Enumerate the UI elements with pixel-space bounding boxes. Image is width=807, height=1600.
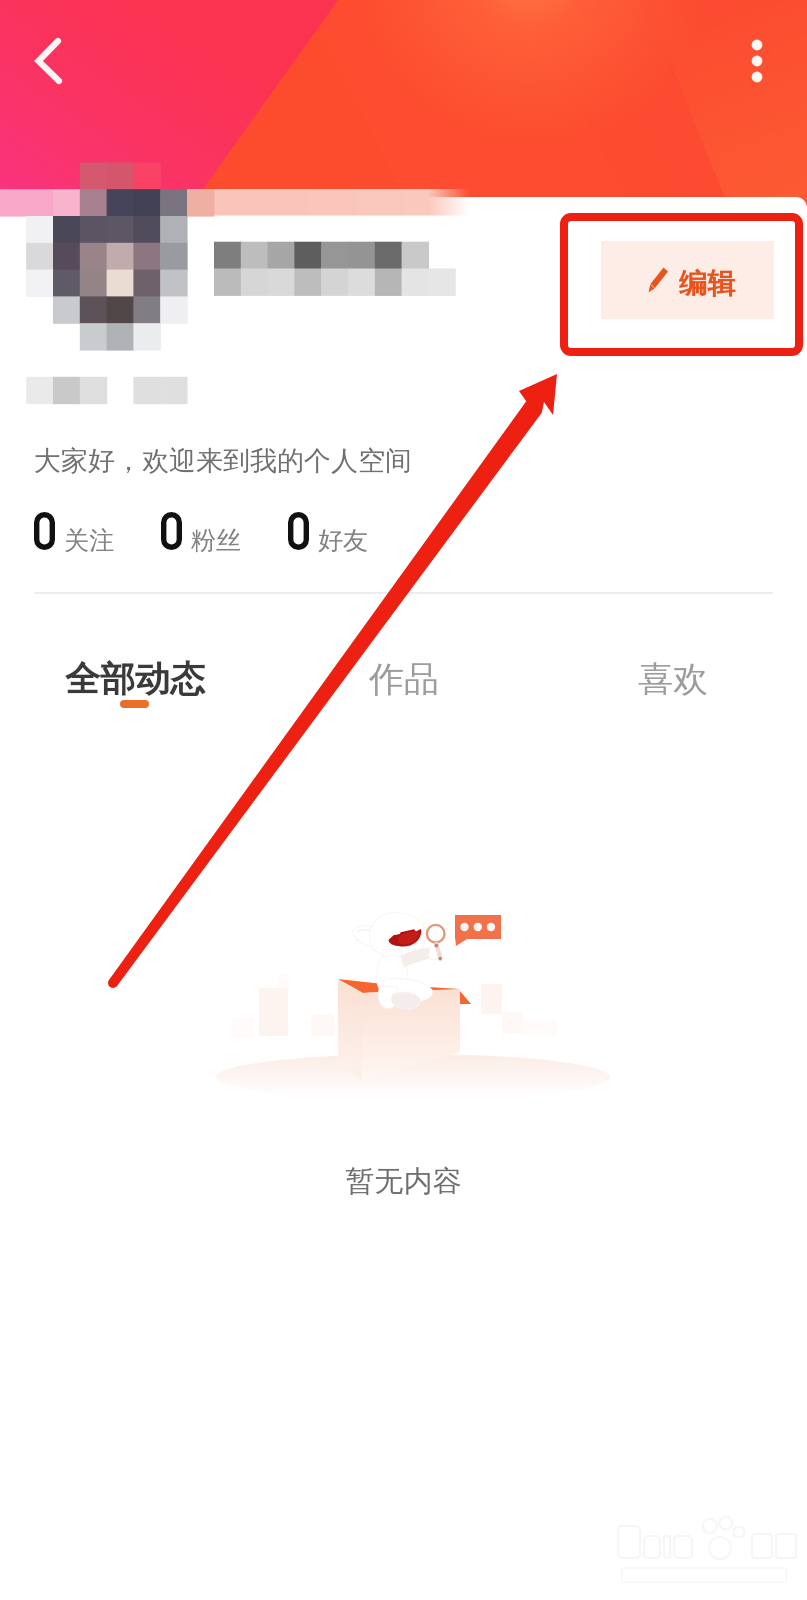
staticText: 暂无内容 [0,1163,807,1200]
button[interactable]: 粉丝 [155,503,281,565]
button[interactable]: 作品 [269,657,538,701]
button[interactable]: 好友 [282,503,408,565]
staticText: 粉丝 [191,525,241,556]
button[interactable]: Back [18,25,88,97]
staticText: 关注 [64,525,114,556]
button[interactable]: 编辑 [601,241,774,319]
button[interactable]: More options [722,26,792,96]
staticText: 大家好，欢迎来到我的个人空间 [34,444,412,478]
staticText: 喜欢 [638,657,708,701]
button[interactable]: 全部动态 [0,657,269,701]
button[interactable]: 喜欢 [538,657,807,701]
staticText: 编辑 [679,266,735,301]
staticText: 全部动态 [65,657,205,701]
staticText: 作品 [369,657,439,701]
button[interactable]: 关注 [28,503,154,565]
staticText: 好友 [318,525,368,556]
